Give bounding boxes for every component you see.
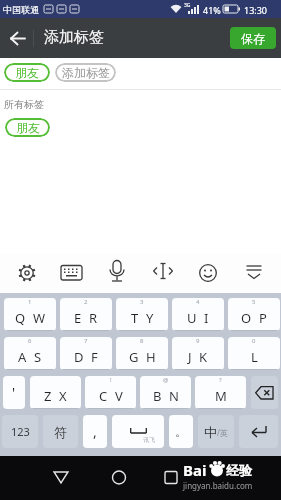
button[interactable] (150, 260, 176, 284)
button[interactable]: 9 (172, 337, 224, 370)
staticText: E (74, 309, 82, 327)
staticText: Y (146, 309, 154, 327)
staticText: M (215, 387, 227, 405)
button[interactable]: 6 (4, 337, 56, 370)
staticText: 7 (84, 337, 88, 345)
staticText: T (131, 309, 139, 327)
staticText: N (169, 387, 179, 405)
staticText: 4 (196, 298, 200, 306)
staticText: 中国联通 (3, 4, 39, 15)
staticText: U (187, 309, 197, 327)
staticText: 朋友 (15, 65, 39, 80)
button[interactable]: , (83, 415, 107, 448)
button[interactable] (106, 466, 132, 490)
button[interactable]: 8 (116, 337, 168, 370)
staticText: 2 (84, 298, 88, 306)
staticText: 41% (203, 4, 221, 16)
button[interactable] (105, 259, 129, 286)
button[interactable] (59, 262, 85, 284)
staticText: W (33, 309, 46, 327)
button[interactable]: 讯飞 (112, 415, 164, 448)
button[interactable]: Z (30, 376, 81, 409)
staticText: /英 (217, 427, 228, 438)
staticText: 8 (140, 337, 144, 345)
button[interactable]: 符 (43, 415, 78, 448)
staticText: 所有标签 (4, 98, 44, 111)
staticText: 讯飞 (143, 436, 155, 444)
staticText: K (199, 348, 208, 366)
staticText: 朋友 (16, 120, 40, 135)
button[interactable]: 7 (60, 337, 112, 370)
button[interactable]: ' (3, 376, 25, 409)
staticText: H (146, 348, 156, 366)
button[interactable] (48, 466, 74, 490)
button[interactable] (241, 262, 267, 284)
staticText: C (99, 387, 108, 405)
staticText: 中 (204, 424, 217, 440)
staticText: 添加标签 (62, 65, 110, 80)
staticText: G (129, 348, 139, 366)
staticText: 3 (140, 298, 144, 306)
staticText: X (59, 387, 67, 405)
button[interactable]: @ (140, 376, 191, 409)
staticText: , (93, 422, 97, 441)
staticText: 9 (196, 337, 200, 345)
button[interactable] (158, 466, 184, 490)
staticText: 符 (54, 424, 67, 440)
staticText: 0 (252, 337, 256, 345)
staticText: 6 (28, 337, 32, 345)
staticText: 13:30 (244, 4, 268, 16)
staticText: O (241, 309, 252, 327)
button[interactable]: 保存 (230, 27, 276, 49)
button[interactable]: 1 (4, 298, 56, 331)
button[interactable]: 朋友 (4, 63, 50, 82)
staticText: Q (15, 309, 26, 327)
staticText: ! (110, 376, 112, 384)
staticText: jingyan.baidu.com (183, 480, 253, 491)
button[interactable]: 中 (198, 415, 234, 448)
staticText: V (115, 387, 123, 405)
button[interactable]: 123 (2, 415, 38, 448)
staticText: 。 (175, 424, 187, 439)
button[interactable]: ? (195, 376, 246, 409)
button[interactable]: 2 (60, 298, 112, 331)
staticText: 1 (28, 298, 32, 306)
staticText: 5 (252, 298, 256, 306)
staticText: A (18, 348, 27, 366)
button[interactable]: 朋友 (5, 118, 50, 137)
staticText: 3G (184, 2, 191, 9)
staticText: @ (163, 376, 169, 384)
staticText: R (89, 309, 98, 327)
staticText: J (188, 348, 192, 366)
button[interactable]: ! (85, 376, 136, 409)
staticText: ' (12, 383, 16, 402)
staticText: I (204, 309, 209, 327)
button[interactable]: 。 (169, 415, 193, 448)
staticText: B (153, 387, 162, 405)
staticText: 添加标签 (44, 28, 104, 47)
button[interactable]: 3 (116, 298, 168, 331)
button[interactable]: 添加标签 (55, 63, 116, 82)
staticText: 保存 (241, 31, 265, 46)
button[interactable]: 4 (172, 298, 224, 331)
staticText: D (74, 348, 84, 366)
staticText: Z (44, 387, 52, 405)
button[interactable] (196, 261, 220, 285)
button[interactable] (251, 376, 278, 409)
staticText: Bai (183, 460, 207, 480)
staticText: P (259, 309, 267, 327)
button[interactable] (239, 415, 278, 448)
button[interactable]: 5 (228, 298, 280, 331)
staticText: ? (219, 376, 222, 384)
staticText: S (34, 348, 42, 366)
staticText: F (91, 348, 98, 366)
staticText: 123 (11, 424, 30, 439)
staticText: L (251, 348, 258, 366)
button[interactable] (14, 260, 40, 286)
staticText: 经验 (226, 462, 252, 478)
button[interactable]: 0 (228, 337, 280, 370)
